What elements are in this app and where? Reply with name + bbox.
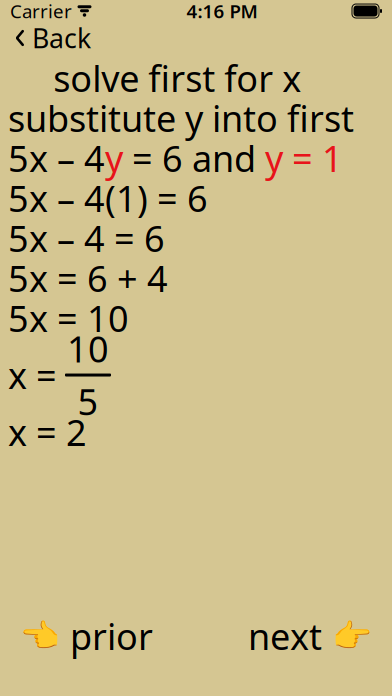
button[interactable]: 👈: [12, 606, 161, 666]
staticText: 5x – 4(1) = 6: [8, 174, 208, 222]
staticText: 5x = 10: [8, 294, 129, 342]
staticText: y = 1: [265, 134, 343, 182]
staticText: 👉: [332, 618, 372, 654]
button[interactable]: Back: [4, 16, 101, 60]
staticText: 5x – 4 = 6: [8, 214, 165, 262]
staticText: Back: [32, 20, 91, 56]
staticText: substitute y into first: [8, 94, 354, 142]
staticText: next: [248, 612, 322, 660]
staticText: y: [105, 134, 123, 182]
button[interactable]: next: [240, 606, 380, 666]
staticText: prior: [70, 612, 153, 660]
staticText: = 6 and: [123, 134, 265, 182]
staticText: 5: [77, 377, 98, 425]
staticText: x =: [8, 351, 57, 399]
staticText: 4:16 PM: [186, 0, 257, 23]
staticText: x = 2: [8, 408, 87, 456]
staticText: 5x – 4: [8, 134, 105, 182]
staticText: 5x = 6 + 4: [8, 254, 168, 302]
staticText: 👈: [20, 618, 60, 654]
staticText: solve first for x: [53, 54, 301, 102]
staticText: Carrier: [10, 0, 72, 23]
staticText: 10: [67, 325, 109, 372]
